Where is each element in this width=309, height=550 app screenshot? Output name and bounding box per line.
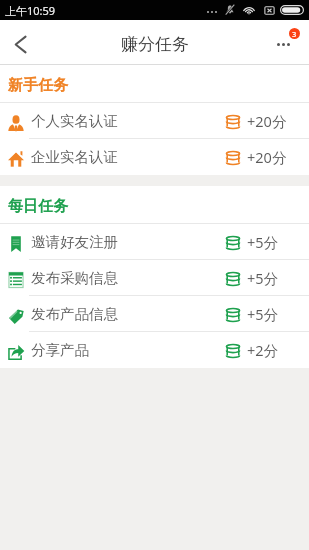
staticText: 邀请好友注册 <box>31 233 118 251</box>
staticText: 发布产品信息 <box>31 305 118 323</box>
staticText: 每日任务 <box>8 197 68 216</box>
staticText: +5分 <box>247 232 279 252</box>
button[interactable]: 分享产品 <box>0 332 309 368</box>
staticText: 3 <box>292 29 297 39</box>
button[interactable]: 个人实名认证 <box>0 103 309 139</box>
staticText: 个人实名认证 <box>31 112 118 130</box>
button[interactable]: 企业实名认证 <box>0 139 309 175</box>
staticText: +5分 <box>247 304 279 324</box>
staticText: 发布采购信息 <box>31 269 118 287</box>
staticText: +2分 <box>247 340 279 360</box>
button[interactable]: 邀请好友注册 <box>0 224 309 260</box>
staticText: +5分 <box>247 268 279 288</box>
button[interactable]: 发布产品信息 <box>0 296 309 332</box>
staticText: 分享产品 <box>31 341 89 359</box>
button[interactable]: Back <box>0 20 42 65</box>
staticText: 上午10:59 <box>5 3 56 18</box>
button[interactable]: More options <box>266 20 309 65</box>
staticText: +20分 <box>247 111 287 131</box>
staticText: 企业实名认证 <box>31 148 118 166</box>
button[interactable]: 发布采购信息 <box>0 260 309 296</box>
staticText: 新手任务 <box>8 76 68 95</box>
staticText: +20分 <box>247 147 287 167</box>
staticText: 赚分任务 <box>121 34 189 55</box>
